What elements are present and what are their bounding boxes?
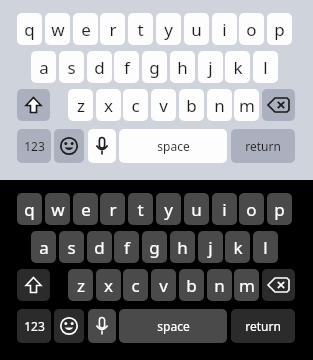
staticText: space <box>157 318 190 334</box>
button[interactable]: e <box>73 13 98 45</box>
button[interactable]: v <box>151 269 176 301</box>
button[interactable]: p <box>267 13 292 45</box>
staticText: d <box>94 236 105 259</box>
staticText: x <box>104 94 113 117</box>
staticText: b <box>186 94 197 117</box>
button[interactable]: p <box>267 193 292 225</box>
button[interactable]: l <box>253 231 278 263</box>
button[interactable]: l <box>253 51 278 83</box>
button[interactable]: k <box>225 51 250 83</box>
staticText: a <box>39 236 49 259</box>
button[interactable]: u <box>184 193 209 225</box>
button[interactable]: b <box>179 89 204 121</box>
button[interactable]: z <box>68 89 93 121</box>
button[interactable]: m <box>234 89 259 121</box>
staticText: g <box>149 56 160 79</box>
button[interactable]: o <box>239 193 264 225</box>
button[interactable]: q <box>17 13 42 45</box>
button[interactable]: i <box>212 193 237 225</box>
button[interactable]: m <box>234 269 259 301</box>
button[interactable]: a <box>31 51 56 83</box>
button[interactable]: d <box>87 51 112 83</box>
staticText: i <box>222 18 227 41</box>
staticText: p <box>274 18 285 41</box>
button[interactable]: x <box>96 89 121 121</box>
button[interactable]: s <box>59 51 84 83</box>
staticText: s <box>67 56 76 79</box>
button[interactable]: c <box>123 89 148 121</box>
button[interactable]: y <box>156 193 181 225</box>
staticText: o <box>246 18 257 41</box>
button[interactable]: space <box>119 309 227 343</box>
button[interactable]: z <box>68 269 93 301</box>
staticText: r <box>109 18 117 41</box>
button[interactable]: c <box>123 269 148 301</box>
button[interactable]: w <box>45 193 70 225</box>
button[interactable]: g <box>142 51 167 83</box>
staticText: u <box>191 18 202 41</box>
button[interactable]: n <box>207 269 232 301</box>
button[interactable]: j <box>198 231 223 263</box>
staticText: l <box>263 236 268 259</box>
button[interactable]: h <box>170 51 195 83</box>
staticText: w <box>51 18 65 41</box>
button[interactable]: g <box>142 231 167 263</box>
button[interactable]: 123 <box>17 129 51 163</box>
button[interactable]: r <box>100 193 125 225</box>
button[interactable]: Voice input <box>88 309 116 343</box>
button[interactable]: i <box>212 13 237 45</box>
button[interactable]: x <box>96 269 121 301</box>
staticText: v <box>159 94 168 117</box>
button[interactable]: a <box>31 231 56 263</box>
button[interactable]: Voice input <box>88 129 116 163</box>
button[interactable]: h <box>170 231 195 263</box>
staticText: x <box>104 274 113 297</box>
button[interactable]: e <box>73 193 98 225</box>
button[interactable]: return <box>231 309 295 343</box>
staticText: y <box>164 198 173 221</box>
button[interactable]: u <box>184 13 209 45</box>
staticText: n <box>214 274 225 297</box>
button[interactable]: Backspace <box>262 269 295 301</box>
button[interactable]: v <box>151 89 176 121</box>
staticText: n <box>214 94 225 117</box>
staticText: f <box>124 56 130 79</box>
button[interactable]: t <box>128 13 153 45</box>
staticText: space <box>157 138 190 154</box>
button[interactable]: return <box>231 129 295 163</box>
button[interactable]: Emoji <box>54 129 84 163</box>
button[interactable]: w <box>45 13 70 45</box>
button[interactable]: f <box>114 51 139 83</box>
button[interactable]: Backspace <box>262 89 295 121</box>
button[interactable]: Emoji <box>54 309 84 343</box>
button[interactable]: y <box>156 13 181 45</box>
button[interactable]: f <box>114 231 139 263</box>
staticText: e <box>81 198 91 221</box>
button[interactable]: s <box>59 231 84 263</box>
staticText: return <box>245 138 281 154</box>
staticText: h <box>177 56 188 79</box>
button[interactable]: o <box>239 13 264 45</box>
staticText: return <box>245 318 281 334</box>
staticText: m <box>239 274 255 297</box>
staticText: o <box>246 198 257 221</box>
button[interactable]: b <box>179 269 204 301</box>
button[interactable]: Shift <box>17 269 50 301</box>
button[interactable]: t <box>128 193 153 225</box>
staticText: 123 <box>24 318 45 334</box>
button[interactable]: 123 <box>17 309 51 343</box>
staticText: k <box>233 56 243 79</box>
staticText: u <box>191 198 202 221</box>
button[interactable]: r <box>100 13 125 45</box>
staticText: m <box>239 94 255 117</box>
staticText: k <box>233 236 243 259</box>
button[interactable]: j <box>198 51 223 83</box>
button[interactable]: n <box>207 89 232 121</box>
button[interactable]: q <box>17 193 42 225</box>
staticText: h <box>177 236 188 259</box>
staticText: b <box>186 274 197 297</box>
button[interactable]: d <box>87 231 112 263</box>
button[interactable]: Shift <box>17 89 50 121</box>
button[interactable]: space <box>119 129 227 163</box>
button[interactable]: k <box>225 231 250 263</box>
